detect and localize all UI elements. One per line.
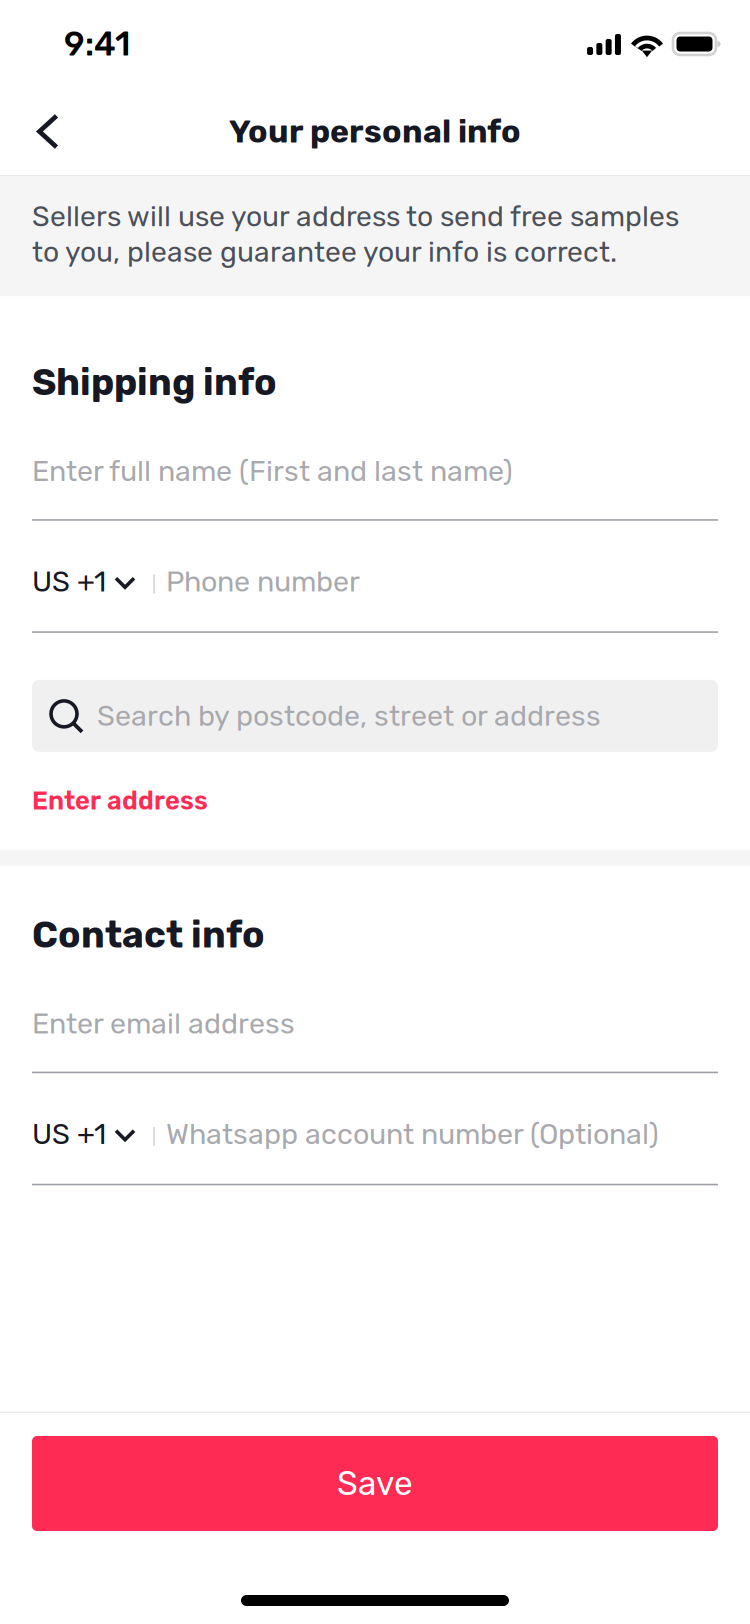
staticText: Shipping info	[32, 360, 277, 404]
button[interactable]: Whatsapp account number (Optional)	[155, 1073, 750, 1184]
button[interactable]: Enter full name (First and last name)	[0, 407, 750, 519]
staticText: Your personal info	[229, 112, 521, 150]
staticText: 9:41	[64, 24, 130, 64]
button[interactable]: Enter address	[0, 752, 750, 850]
button[interactable]: Country code US +1	[0, 1073, 153, 1184]
staticText: Contact info	[32, 913, 265, 957]
staticText: Sellers will use your address to send fr…	[32, 200, 679, 269]
staticText: US +1	[32, 565, 106, 599]
staticText: Enter address	[32, 786, 208, 816]
button[interactable]: Save	[0, 1413, 750, 1531]
button[interactable]: Enter email address	[0, 960, 750, 1072]
button[interactable]: Search by postcode, street or address	[0, 680, 750, 752]
staticText: Enter email address	[32, 1007, 295, 1041]
button[interactable]: Country code US +1	[0, 521, 153, 631]
staticText: Save	[337, 1464, 413, 1503]
staticText: Enter full name (First and last name)	[32, 454, 513, 488]
staticText: Search by postcode, street or address	[97, 699, 601, 733]
button[interactable]: Phone number	[155, 521, 750, 631]
button[interactable]: Back	[0, 87, 89, 175]
staticText: Phone number	[166, 565, 360, 599]
staticText: US +1	[32, 1117, 106, 1151]
staticText: Whatsapp account number (Optional)	[166, 1117, 659, 1151]
